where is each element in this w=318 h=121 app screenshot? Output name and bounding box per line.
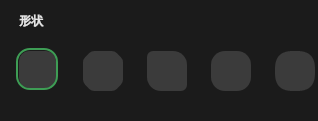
button[interactable]: Shape 1, selected [16,48,58,90]
staticText: 形状 [19,13,43,28]
button[interactable]: Shape 2 [83,51,123,91]
button[interactable]: Shape 5 [275,51,315,91]
button[interactable]: Shape 3 [147,51,187,91]
button[interactable]: Shape 4 [211,51,251,91]
